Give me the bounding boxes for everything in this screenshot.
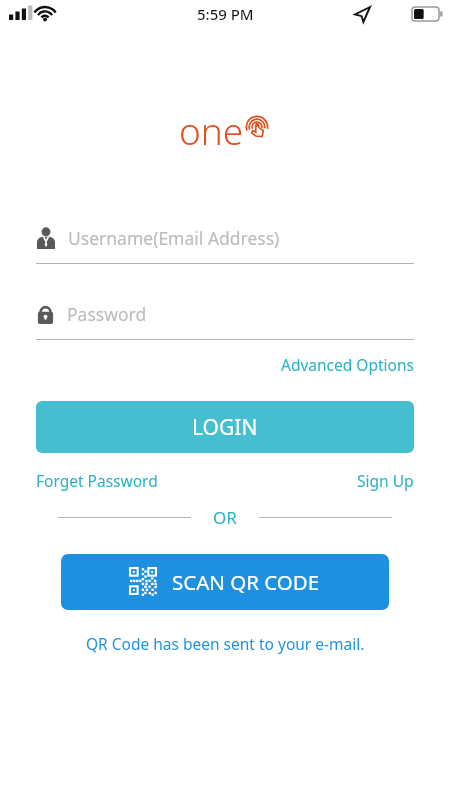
staticText: Forget Password [36,470,158,491]
other: Username [36,227,56,249]
staticText: 5:59 PM [197,4,254,24]
button[interactable]: Password [36,296,414,332]
staticText: Password [67,302,147,326]
staticText: LOGIN [192,413,258,442]
staticText: Username(Email Address) [68,226,280,250]
staticText: Sign Up [357,470,414,491]
button[interactable]: LOGIN [36,401,414,453]
button[interactable]: Advanced Options [279,351,416,378]
staticText: SCAN QR CODE [172,568,320,596]
button[interactable]: Forget Password [36,467,158,494]
staticText: QR Code has been sent to your e-mail. [86,633,365,654]
other: Password [36,303,55,325]
staticText: one [179,105,244,155]
button[interactable]: Sign Up [357,467,414,494]
button[interactable]: Username [36,220,414,256]
staticText: OR [213,506,237,529]
staticText: Advanced Options [281,354,414,375]
button[interactable]: SCAN QR CODE [61,554,389,610]
